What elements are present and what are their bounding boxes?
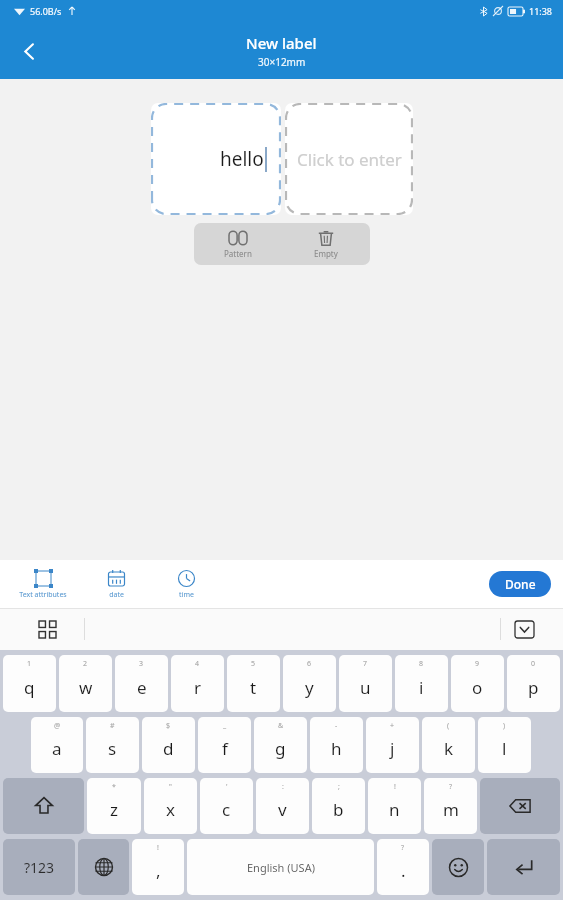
staticText: " — [169, 782, 172, 792]
staticText: y — [305, 676, 314, 699]
staticText: z — [110, 798, 118, 821]
button[interactable]: Hide keyboard — [507, 612, 541, 646]
staticText: Pattern — [224, 248, 252, 259]
button[interactable]: Change language — [78, 839, 129, 895]
staticText: & — [278, 721, 284, 731]
button[interactable]: 0 — [507, 655, 560, 712]
staticText: ) — [503, 721, 506, 731]
button[interactable]: hello — [151, 103, 281, 215]
staticText: ?123 — [24, 858, 55, 877]
staticText: c — [222, 798, 231, 821]
button[interactable]: - — [310, 717, 363, 773]
button[interactable]: 9 — [451, 655, 504, 712]
staticText: u — [360, 676, 371, 699]
button[interactable]: ? — [377, 839, 429, 895]
button[interactable]: Keyboard layouts — [32, 614, 62, 644]
button[interactable]: _ — [198, 717, 251, 773]
staticText: 0 — [531, 659, 536, 669]
button[interactable]: Shift — [3, 778, 84, 834]
button[interactable]: Empty — [282, 223, 370, 265]
button[interactable]: English (USA) — [187, 839, 374, 895]
staticText: _ — [223, 721, 227, 731]
staticText: r — [194, 676, 202, 699]
button[interactable]: Click to enter — [285, 103, 413, 215]
staticText: i — [419, 676, 424, 699]
staticText: 1 — [27, 659, 32, 669]
button[interactable]: ? — [424, 778, 477, 834]
staticText: Click to enter — [297, 148, 402, 171]
button[interactable]: 2 — [59, 655, 112, 712]
button[interactable]: time — [162, 569, 210, 600]
staticText: s — [108, 737, 117, 760]
button[interactable]: Backspace — [480, 778, 560, 834]
button[interactable]: 3 — [115, 655, 168, 712]
staticText: 5 — [251, 659, 256, 669]
button[interactable]: Done — [489, 571, 551, 597]
button[interactable]: 4 — [171, 655, 224, 712]
staticText: n — [389, 798, 400, 821]
button[interactable]: 1 — [3, 655, 56, 712]
staticText: t — [250, 676, 257, 699]
button[interactable]: @ — [31, 717, 83, 773]
button[interactable]: " — [144, 778, 197, 834]
button[interactable]: # — [86, 717, 139, 773]
button[interactable]: date — [92, 569, 140, 600]
button[interactable]: Back — [6, 28, 52, 74]
staticText: @ — [54, 721, 61, 731]
button[interactable]: 7 — [339, 655, 392, 712]
button[interactable]: + — [366, 717, 419, 773]
staticText: , — [156, 859, 161, 882]
staticText: b — [333, 798, 344, 821]
button[interactable]: 6 — [283, 655, 336, 712]
staticText: 30×12mm — [258, 55, 306, 69]
staticText: 4 — [195, 659, 200, 669]
button[interactable]: ! — [132, 839, 184, 895]
staticText: English (USA) — [247, 860, 315, 875]
button[interactable]: * — [87, 778, 141, 834]
staticText: - — [335, 721, 338, 731]
button[interactable]: 5 — [227, 655, 280, 712]
staticText: New label — [246, 33, 317, 53]
staticText: * — [112, 782, 116, 792]
button[interactable]: ) — [478, 717, 531, 773]
staticText: e — [137, 676, 147, 699]
button[interactable]: Enter — [487, 839, 560, 895]
staticText: ! — [394, 782, 396, 792]
staticText: Empty — [314, 248, 338, 259]
button[interactable]: $ — [142, 717, 195, 773]
button[interactable]: ( — [422, 717, 475, 773]
staticText: a — [52, 737, 62, 760]
staticText: # — [110, 721, 115, 731]
staticText: 2 — [83, 659, 88, 669]
button[interactable]: ; — [312, 778, 365, 834]
button[interactable]: Pattern — [194, 223, 282, 265]
staticText: ; — [338, 782, 340, 792]
staticText: p — [528, 676, 539, 699]
staticText: $ — [166, 721, 171, 731]
staticText: w — [79, 676, 93, 699]
button[interactable]: ! — [368, 778, 421, 834]
staticText: 9 — [475, 659, 480, 669]
staticText: 6 — [307, 659, 312, 669]
staticText: g — [275, 737, 286, 760]
staticText: ! — [157, 843, 159, 853]
button[interactable]: 8 — [395, 655, 448, 712]
button[interactable]: Emoji — [432, 839, 484, 895]
button[interactable]: Text attributes — [12, 569, 74, 600]
staticText: ? — [449, 782, 453, 792]
staticText: m — [443, 798, 459, 821]
staticText: f — [222, 737, 228, 760]
staticText: d — [163, 737, 174, 760]
button[interactable]: : — [256, 778, 309, 834]
staticText: 56.0B/s — [30, 5, 62, 17]
button[interactable]: ?123 — [3, 839, 75, 895]
staticText: hello — [220, 146, 264, 172]
staticText: j — [390, 737, 395, 760]
staticText: q — [24, 676, 35, 699]
staticText: ( — [447, 721, 450, 731]
staticText: 3 — [139, 659, 144, 669]
staticText: 8 — [419, 659, 424, 669]
button[interactable]: & — [254, 717, 307, 773]
staticText: : — [282, 782, 284, 792]
button[interactable]: ' — [200, 778, 253, 834]
